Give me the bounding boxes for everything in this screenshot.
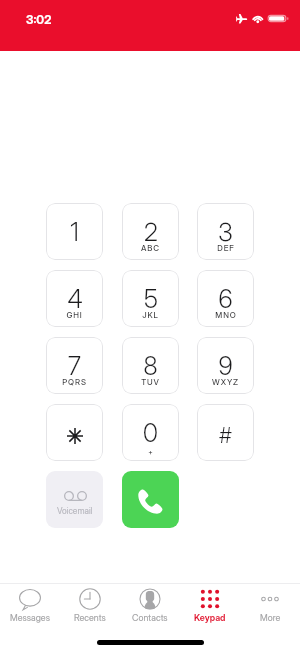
button[interactable]: 3	[197, 203, 254, 260]
button[interactable]: 7	[46, 337, 103, 394]
staticText: Recents	[74, 612, 106, 623]
button[interactable]: 9	[197, 337, 254, 394]
button[interactable]: 6	[197, 270, 254, 327]
button[interactable]: 1	[46, 203, 103, 260]
staticText: GHI	[66, 310, 83, 320]
staticText: Messages	[10, 612, 50, 623]
staticText: #	[219, 423, 232, 448]
staticText: 2	[144, 217, 158, 247]
staticText: Voicemail	[57, 506, 93, 516]
button[interactable]: More	[240, 584, 300, 626]
staticText: 8	[143, 351, 158, 381]
staticText: 0	[143, 418, 158, 448]
staticText: 4	[67, 284, 83, 314]
staticText: 9	[218, 351, 233, 381]
staticText: JKL	[142, 310, 159, 320]
staticText: PQRS	[62, 377, 87, 387]
staticText: 5	[144, 284, 158, 314]
button[interactable]: 0	[122, 404, 179, 461]
button[interactable]	[46, 404, 103, 461]
staticText: 3	[218, 217, 233, 247]
staticText: DEF	[217, 243, 235, 253]
button[interactable]: 4	[46, 270, 103, 327]
staticText: TUV	[141, 377, 160, 387]
button[interactable]: #	[197, 404, 254, 461]
button[interactable]: Contacts	[120, 584, 180, 626]
staticText: WXYZ	[212, 377, 239, 387]
staticText: 6	[218, 284, 233, 314]
staticText: More	[260, 612, 281, 623]
staticText: MNO	[215, 310, 237, 320]
button[interactable]: 5	[122, 270, 179, 327]
button[interactable]: Recents	[60, 584, 120, 626]
button[interactable]: 2	[122, 203, 179, 260]
staticText: +	[148, 448, 154, 456]
staticText: 3:02	[26, 12, 52, 27]
staticText: 1	[70, 217, 79, 247]
button[interactable]: Keypad	[180, 584, 240, 626]
button[interactable]: Messages	[0, 584, 60, 626]
button[interactable]: Call	[122, 471, 179, 528]
staticText: ABC	[141, 243, 160, 253]
staticText: 7	[68, 351, 81, 381]
button[interactable]: 8	[122, 337, 179, 394]
staticText: Contacts	[132, 612, 168, 623]
button[interactable]: Voicemail	[46, 471, 103, 528]
staticText: Keypad	[194, 612, 226, 623]
